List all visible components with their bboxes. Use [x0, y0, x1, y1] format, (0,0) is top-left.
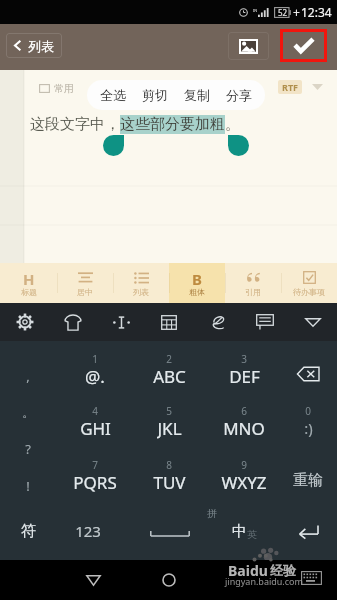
button[interactable]: 2	[139, 348, 199, 370]
button[interactable]: Handwriting	[193, 303, 241, 341]
button[interactable]: 9	[214, 454, 274, 476]
button[interactable]: 复制	[176, 80, 218, 110]
staticText: 0	[305, 404, 311, 418]
staticText: 重输	[293, 471, 323, 490]
button[interactable]: :)	[278, 417, 337, 439]
staticText: H	[23, 269, 35, 286]
staticText: TUV	[153, 471, 186, 493]
button[interactable]: 6	[214, 400, 274, 422]
staticText: 中	[232, 522, 247, 541]
button[interactable]: 引用	[225, 263, 281, 303]
staticText: jingyan.baidu.com	[225, 575, 303, 587]
staticText: 这些部分要加粗	[120, 115, 225, 134]
button[interactable]: RTF	[278, 80, 302, 94]
staticText: 分享	[226, 87, 252, 103]
button[interactable]: JKL	[139, 417, 199, 439]
staticText: !	[26, 477, 30, 495]
button[interactable]: ABC	[139, 365, 199, 387]
staticText: 常用	[54, 82, 74, 95]
staticText: 标题	[21, 287, 37, 297]
button[interactable]: 分享	[218, 80, 260, 110]
staticText: 待办事项	[293, 287, 325, 297]
staticText: 粗体	[189, 287, 205, 297]
staticText: 6	[241, 404, 247, 418]
button[interactable]: H	[0, 263, 57, 303]
button[interactable]: 拼	[182, 502, 242, 524]
staticText: 列表	[133, 287, 149, 297]
button[interactable]: 3	[214, 348, 274, 370]
staticText: 拼	[207, 507, 217, 520]
button[interactable]: 符	[0, 520, 58, 542]
staticText: 剪切	[142, 87, 168, 103]
staticText: 。	[22, 404, 35, 420]
button[interactable]: ,	[0, 365, 58, 387]
staticText: 全选	[100, 87, 126, 103]
staticText: 2	[166, 352, 172, 366]
button[interactable]: 列表	[6, 33, 62, 58]
button[interactable]: Text cursor	[97, 303, 145, 341]
button[interactable]: @.	[65, 365, 125, 387]
button[interactable]: 4	[65, 400, 125, 422]
button[interactable]: Hide keyboard	[289, 303, 337, 341]
staticText: ,	[26, 367, 30, 385]
button[interactable]: 待办事项	[281, 263, 337, 303]
button[interactable]: Backspace	[284, 357, 332, 391]
staticText: @.	[85, 365, 105, 387]
staticText: :)	[304, 418, 313, 438]
button[interactable]: Layout	[145, 303, 193, 341]
staticText: 8	[166, 458, 172, 472]
button[interactable]: 中	[224, 521, 264, 541]
staticText: GHI	[80, 417, 111, 439]
staticText: 居中	[77, 287, 93, 297]
button[interactable]: PQRS	[65, 471, 125, 493]
button[interactable]: 0	[278, 400, 337, 422]
button[interactable]: 5	[139, 400, 199, 422]
staticText: 7	[92, 458, 98, 472]
staticText: 52	[278, 7, 288, 18]
button[interactable]: 剪切	[134, 80, 176, 110]
button[interactable]: 居中	[57, 263, 113, 303]
button[interactable]: 。	[0, 401, 58, 423]
button[interactable]: MNO	[214, 417, 274, 439]
button[interactable]: Messages	[241, 303, 289, 341]
button[interactable]: TUV	[139, 471, 199, 493]
staticText: RTF	[282, 81, 299, 93]
button[interactable]: Theme	[49, 303, 97, 341]
button[interactable]: ?	[0, 438, 58, 460]
button[interactable]: Home	[145, 560, 193, 600]
button[interactable]: 全选	[92, 80, 134, 110]
staticText: 123	[75, 521, 101, 541]
staticText: ᴵᴺ	[253, 8, 258, 16]
staticText: 经验	[270, 562, 296, 578]
button[interactable]: 7	[65, 454, 125, 476]
staticText: ABC	[153, 365, 186, 387]
button[interactable]: More	[306, 78, 328, 96]
staticText: 4	[92, 404, 98, 418]
button[interactable]: Back	[69, 560, 117, 600]
button[interactable]: 123	[58, 520, 118, 542]
button[interactable]: 常用	[39, 82, 74, 95]
button[interactable]: Insert image	[228, 32, 269, 60]
staticText: +	[293, 4, 300, 20]
button[interactable]: DEF	[214, 365, 274, 387]
staticText: WXYZ	[221, 471, 267, 493]
staticText: DEF	[229, 365, 260, 387]
button[interactable]: B	[169, 263, 225, 303]
button[interactable]: !	[0, 475, 58, 497]
staticText: 符	[21, 522, 36, 541]
staticText: Baidu	[228, 561, 268, 580]
button[interactable]: 重输	[278, 469, 337, 491]
button[interactable]: Done	[280, 29, 327, 62]
button[interactable]: Settings	[0, 303, 49, 341]
button[interactable]: Enter	[284, 514, 332, 548]
button[interactable]: WXYZ	[214, 471, 274, 493]
button[interactable]: Space	[146, 516, 194, 550]
button[interactable]: 8	[139, 454, 199, 476]
staticText: 这段文字中，	[30, 115, 120, 134]
staticText: 引用	[245, 287, 261, 297]
staticText: 9	[241, 458, 247, 472]
button[interactable]: 1	[65, 348, 125, 370]
button[interactable]: GHI	[65, 417, 125, 439]
button[interactable]: 列表	[113, 263, 169, 303]
staticText: PQRS	[73, 471, 117, 493]
